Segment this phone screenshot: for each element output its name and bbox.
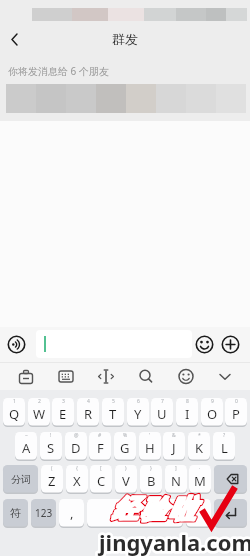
staticText: * <box>198 432 201 439</box>
button[interactable]: 。 <box>186 499 211 527</box>
staticText: R <box>84 405 93 423</box>
button[interactable]: , <box>59 499 84 527</box>
staticText: 123 <box>35 506 53 520</box>
button[interactable] <box>213 364 237 388</box>
button[interactable]: * <box>188 432 210 460</box>
button[interactable]: · <box>189 465 211 493</box>
button[interactable]: ( <box>41 465 63 493</box>
staticText: O <box>207 405 218 423</box>
staticText: 5 <box>112 398 115 405</box>
staticText: A <box>22 439 31 457</box>
button[interactable]: # <box>89 432 111 460</box>
button[interactable]: [ <box>90 465 112 493</box>
staticText: jingyanla.com <box>99 527 250 556</box>
staticText: S <box>47 439 55 457</box>
button[interactable]: 5 <box>102 398 124 426</box>
button[interactable] <box>6 334 27 355</box>
staticText: V <box>122 472 130 490</box>
button[interactable] <box>214 465 247 493</box>
staticText: E <box>59 405 67 423</box>
staticText: W <box>33 405 46 423</box>
button[interactable]: & <box>163 432 185 460</box>
staticText: P <box>232 405 240 423</box>
staticText: 分词 <box>11 473 31 486</box>
button[interactable] <box>195 335 214 354</box>
staticText: 1 <box>13 398 16 405</box>
staticText: J <box>172 439 176 457</box>
staticText: ! <box>50 432 52 439</box>
staticText: Q <box>9 405 20 423</box>
button[interactable] <box>14 364 38 388</box>
staticText: ' <box>149 432 151 439</box>
staticText: # <box>98 432 102 439</box>
button[interactable]: 4 <box>77 398 99 426</box>
staticText: Y <box>134 405 142 423</box>
staticText: 3 <box>62 398 65 405</box>
button[interactable]: } <box>140 465 162 493</box>
staticText: 你将发消息给 6 个朋友 <box>8 64 109 78</box>
staticText: H <box>145 439 155 457</box>
button[interactable]: @ <box>65 432 87 460</box>
button[interactable] <box>134 364 158 388</box>
staticText: I <box>185 405 190 423</box>
button[interactable] <box>214 499 247 527</box>
staticText: 6 <box>137 398 140 405</box>
button[interactable]: 0 <box>225 398 247 426</box>
staticText: ) <box>125 465 127 472</box>
button[interactable]: ~ <box>15 432 37 460</box>
button[interactable] <box>4 26 28 52</box>
button[interactable]: 9 <box>201 398 223 426</box>
staticText: N <box>171 472 181 490</box>
button[interactable] <box>36 330 192 358</box>
staticText: { <box>76 465 78 472</box>
staticText: F <box>97 439 104 457</box>
staticText: C <box>97 472 106 490</box>
staticText: M <box>194 472 206 490</box>
staticText: U <box>157 405 167 423</box>
button[interactable] <box>54 364 78 388</box>
button[interactable] <box>174 364 198 388</box>
staticText: } <box>150 465 152 472</box>
button[interactable]: 6 <box>127 398 149 426</box>
staticText: ( <box>51 465 53 472</box>
button[interactable]: 8 <box>176 398 198 426</box>
staticText: B <box>147 472 156 490</box>
staticText: G <box>120 439 130 457</box>
button[interactable]: ' <box>139 432 161 460</box>
button[interactable]: 1 <box>3 398 25 426</box>
staticText: % <box>123 432 128 439</box>
button[interactable] <box>221 335 240 354</box>
staticText: L <box>221 439 228 457</box>
button[interactable]: 符 <box>3 499 28 527</box>
button[interactable]: { <box>66 465 88 493</box>
staticText: 经验啦 <box>112 493 198 526</box>
button[interactable]: 分词 <box>3 465 38 493</box>
staticText: T <box>109 405 117 423</box>
staticText: D <box>71 439 81 457</box>
staticText: · <box>199 465 201 472</box>
button[interactable]: ! <box>40 432 62 460</box>
button[interactable] <box>94 364 118 388</box>
staticText: Z <box>48 472 56 490</box>
staticText: X <box>73 472 81 490</box>
button[interactable]: ) <box>115 465 137 493</box>
button[interactable]: % <box>114 432 136 460</box>
staticText: @ <box>74 432 79 439</box>
staticText: 8 <box>186 398 189 405</box>
staticText: 符 <box>10 506 21 520</box>
button[interactable]: ] <box>165 465 187 493</box>
staticText: 经验啦 <box>112 493 198 526</box>
staticText: [ <box>100 465 102 472</box>
button[interactable]: 123 <box>31 499 56 527</box>
button[interactable] <box>87 499 183 527</box>
staticText: 2 <box>38 398 41 405</box>
button[interactable]: ? <box>213 432 235 460</box>
button[interactable]: 3 <box>52 398 74 426</box>
button[interactable]: 2 <box>28 398 50 426</box>
button[interactable]: 7 <box>151 398 173 426</box>
staticText: 0 <box>235 398 238 405</box>
staticText: K <box>195 439 204 457</box>
staticText: jingyanla.com <box>99 527 250 556</box>
staticText: 7 <box>161 398 164 405</box>
staticText: 群发 <box>112 31 138 47</box>
